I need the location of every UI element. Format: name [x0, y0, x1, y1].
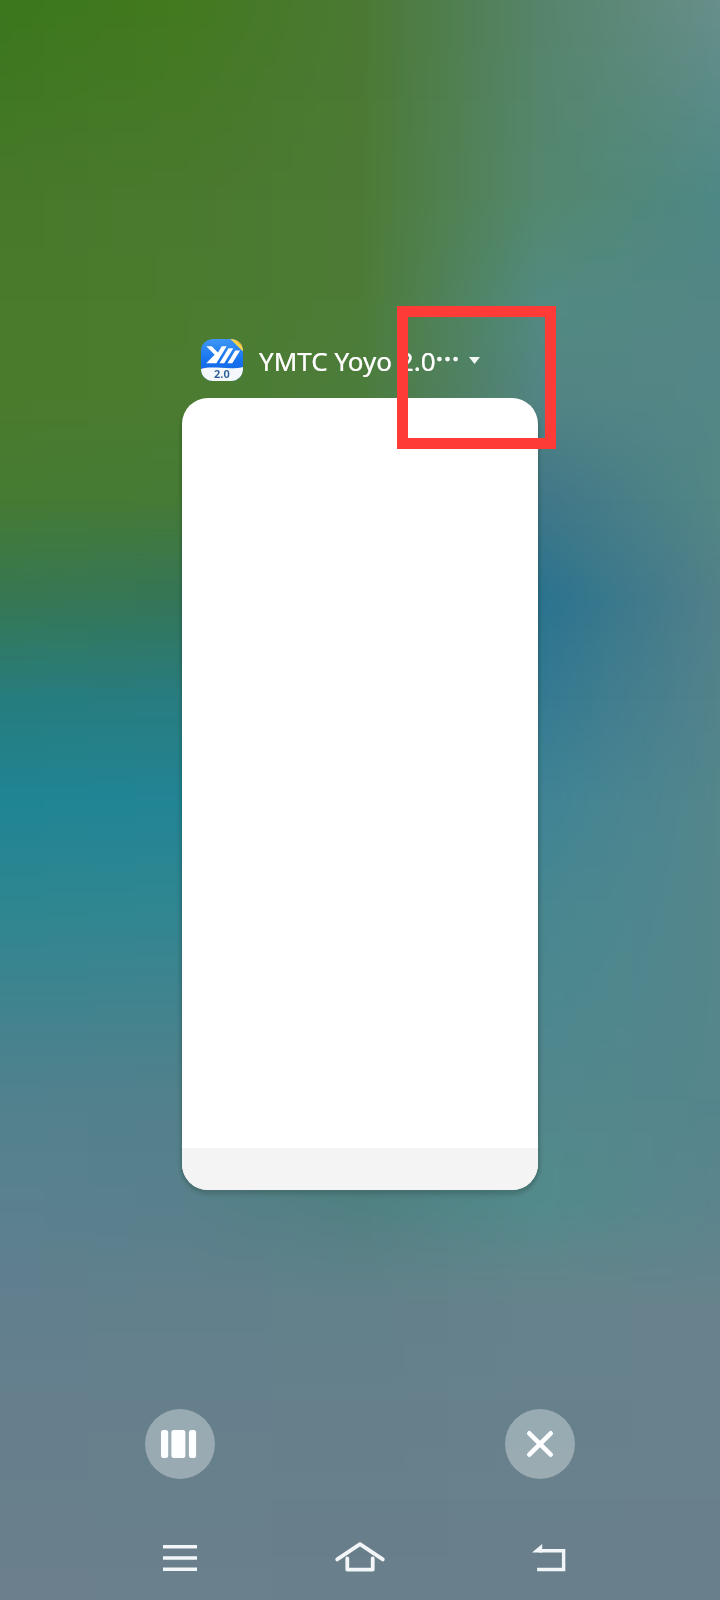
button[interactable]: Clear all [505, 1409, 575, 1479]
button[interactable]: Back [509, 1518, 589, 1598]
button[interactable]: Recent apps [140, 1518, 220, 1598]
button[interactable]: Split screen [145, 1409, 215, 1479]
staticText: 2.0 [214, 366, 230, 381]
button[interactable]: Home [320, 1517, 400, 1597]
button[interactable]: 2.0 [201, 339, 480, 381]
button[interactable] [182, 398, 538, 1190]
staticText: YMTC Yoyo 2.0 [259, 343, 436, 378]
